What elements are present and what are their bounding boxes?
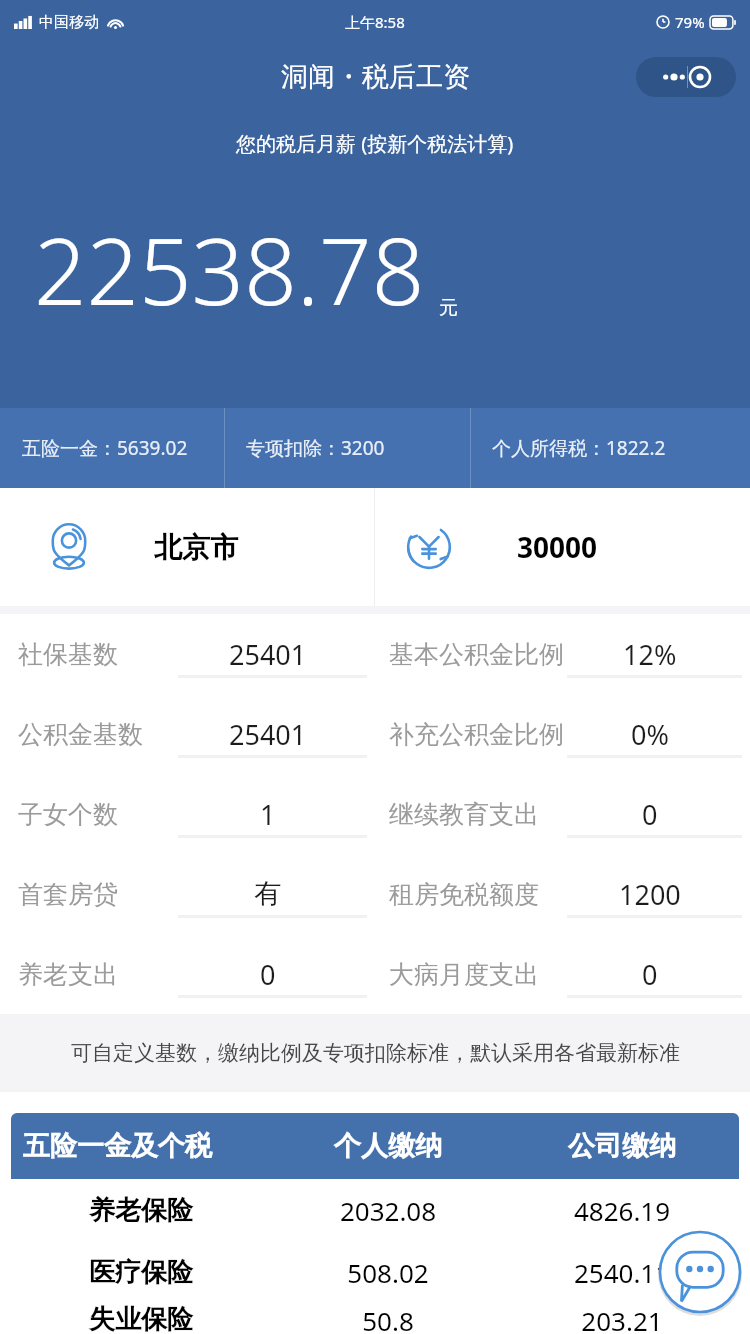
- button[interactable]: More options: [636, 57, 736, 97]
- staticText: 专项扣除：3200: [246, 435, 385, 461]
- button[interactable]: 五险一金：5639.02: [0, 408, 224, 488]
- button[interactable]: 继续教育支出: [375, 774, 750, 854]
- staticText: 0%: [631, 716, 669, 753]
- staticText: 个人缴纳: [271, 1129, 505, 1163]
- button[interactable]: 养老支出: [0, 934, 375, 1014]
- button[interactable]: 基本公积金比例: [375, 614, 750, 694]
- staticText: 租房免税额度: [389, 879, 539, 910]
- staticText: 1200: [619, 876, 681, 913]
- staticText: 失业保险: [11, 1303, 271, 1334]
- staticText: 养老保险: [11, 1194, 271, 1227]
- staticText: 22538.78: [34, 207, 425, 332]
- staticText: 首套房贷: [18, 879, 118, 910]
- button[interactable]: Feedback: [656, 1228, 744, 1316]
- button[interactable]: 养老保险: [11, 1179, 739, 1241]
- staticText: 您的税后月薪 (按新个税法计算): [236, 130, 514, 157]
- other: Salary: [403, 521, 455, 573]
- staticText: 继续教育支出: [389, 799, 539, 830]
- staticText: 基本公积金比例: [389, 639, 564, 670]
- button[interactable]: 补充公积金比例: [375, 694, 750, 774]
- staticText: 五险一金：5639.02: [22, 435, 188, 461]
- staticText: 大病月度支出: [389, 959, 539, 990]
- staticText: 洞闻・税后工资: [281, 60, 470, 94]
- other: Location: [42, 520, 96, 574]
- button[interactable]: Salary: [375, 488, 750, 606]
- staticText: 个人所得税：1822.2: [492, 435, 666, 461]
- staticText: 社保基数: [18, 639, 118, 670]
- staticText: 养老支出: [18, 959, 118, 990]
- staticText: 12%: [623, 636, 677, 673]
- staticText: 0: [642, 796, 658, 833]
- button[interactable]: 专项扣除：3200: [224, 408, 470, 488]
- staticText: 0: [260, 956, 276, 993]
- staticText: 公积金基数: [18, 719, 143, 750]
- staticText: 五险一金及个税: [23, 1129, 271, 1163]
- button[interactable]: 租房免税额度: [375, 854, 750, 934]
- button[interactable]: 医疗保险: [11, 1241, 739, 1303]
- staticText: 北京市: [154, 530, 238, 565]
- staticText: 1: [260, 796, 276, 833]
- staticText: 可自定义基数，缴纳比例及专项扣除标准，默认采用各省最新标准: [71, 1040, 680, 1066]
- staticText: 508.02: [271, 1255, 505, 1290]
- staticText: 4826.19: [505, 1193, 739, 1228]
- staticText: 2540.11: [505, 1255, 739, 1290]
- staticText: 有: [254, 877, 281, 911]
- button[interactable]: 社保基数: [0, 614, 375, 694]
- button[interactable]: 大病月度支出: [375, 934, 750, 1014]
- button[interactable]: 失业保险: [11, 1303, 739, 1334]
- staticText: 上午8:58: [345, 12, 405, 32]
- button[interactable]: 个人所得税：1822.2: [470, 408, 750, 488]
- staticText: 医疗保险: [11, 1256, 271, 1289]
- staticText: 30000: [517, 528, 598, 566]
- staticText: 公司缴纳: [505, 1129, 739, 1163]
- button[interactable]: 子女个数: [0, 774, 375, 854]
- staticText: 50.8: [271, 1303, 505, 1334]
- button[interactable]: Location: [0, 488, 374, 606]
- staticText: 2032.08: [271, 1193, 505, 1228]
- staticText: 25401: [229, 636, 307, 673]
- staticText: 79%: [675, 12, 705, 32]
- staticText: 元: [439, 296, 458, 320]
- staticText: 子女个数: [18, 799, 118, 830]
- staticText: 203.21: [505, 1303, 739, 1334]
- button[interactable]: 公积金基数: [0, 694, 375, 774]
- button[interactable]: 首套房贷: [0, 854, 375, 934]
- staticText: 0: [642, 956, 658, 993]
- staticText: 25401: [229, 716, 307, 753]
- staticText: 补充公积金比例: [389, 719, 564, 750]
- staticText: 中国移动: [39, 13, 99, 32]
